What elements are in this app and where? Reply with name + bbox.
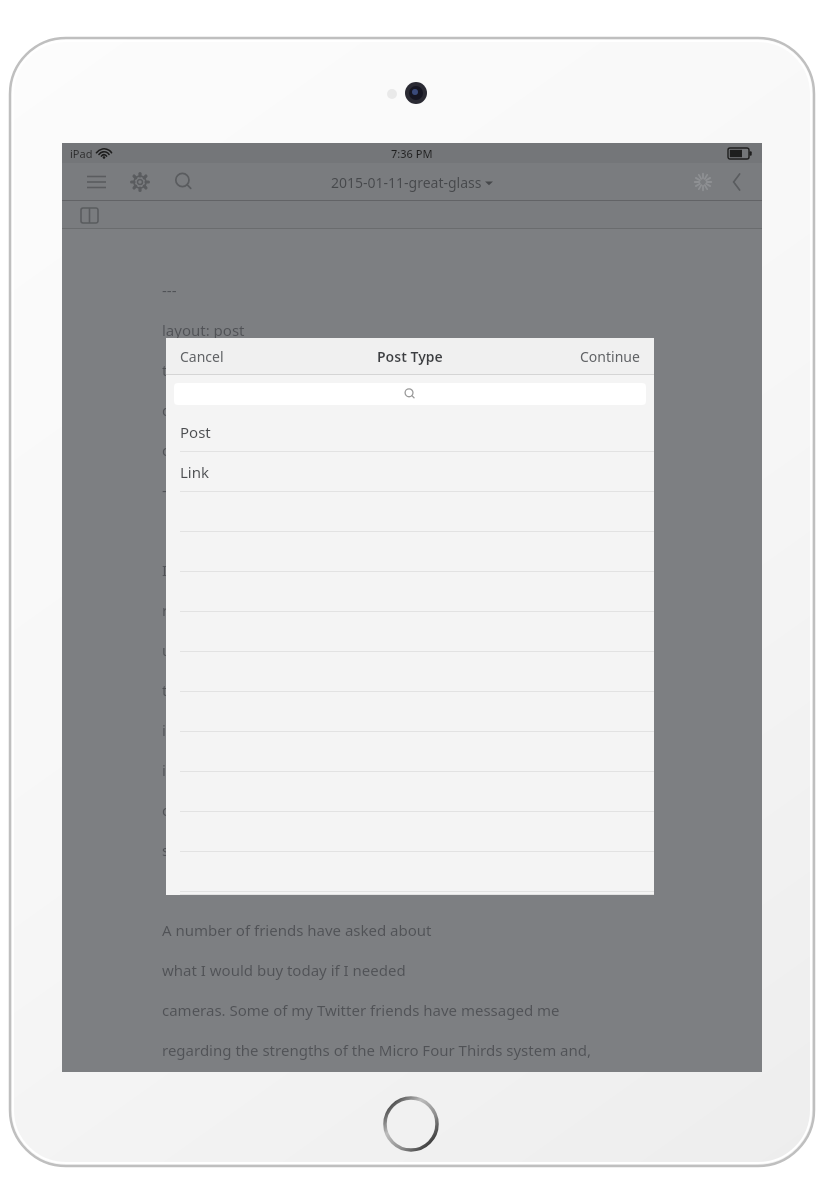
staticText: 7:36 PM (391, 146, 433, 161)
staticText: A number of friends have asked about (162, 920, 432, 940)
button[interactable]: Search post types (174, 383, 646, 405)
button[interactable]: Link (166, 452, 654, 492)
staticText: systems than the big DSLR bodies (162, 840, 400, 860)
staticText: curious about smaller mirrorless (162, 800, 392, 820)
staticText: layout: post (162, 320, 245, 340)
button[interactable]: Back (720, 165, 754, 199)
staticText: Link (180, 462, 210, 482)
staticText: categories: photography (162, 440, 336, 460)
staticText: recommendations more often than (162, 600, 410, 620)
staticText: usual in the past few months. My (162, 640, 395, 660)
button[interactable]: Settings (118, 165, 162, 199)
staticText: --- (162, 280, 177, 300)
staticText: Cancel (180, 347, 224, 366)
button[interactable]: Post (166, 412, 654, 452)
staticText: iPad (70, 146, 93, 161)
staticText: Post (180, 422, 211, 442)
staticText: it seems people are increasingly (162, 760, 388, 780)
button[interactable]: Menu (74, 165, 118, 199)
button[interactable]: Cancel (166, 338, 238, 375)
staticText: --- (162, 480, 177, 500)
staticText: time with the Olympus has come up (162, 680, 416, 700)
staticText: what I would buy today if I needed (162, 960, 406, 980)
staticText: in most of those conversations, and (162, 720, 414, 740)
button[interactable]: 2015-01-11-great-glass (331, 173, 493, 192)
staticText: date: 2015-01-11 (162, 400, 280, 420)
staticText: Post Type (377, 347, 443, 366)
staticText: cameras. Some of my Twitter friends have… (162, 1000, 560, 1020)
staticText: title: Great Glass (162, 360, 278, 380)
staticText: Continue (580, 347, 640, 366)
button[interactable]: Continue (566, 338, 654, 375)
button[interactable]: Search (162, 165, 206, 199)
staticText: 2015-01-11-great-glass (331, 173, 482, 192)
staticText: regarding the strengths of the Micro Fou… (162, 1040, 592, 1060)
button[interactable]: Toggle sidebar (72, 202, 106, 228)
staticText: I have been asked about camera (162, 560, 391, 580)
